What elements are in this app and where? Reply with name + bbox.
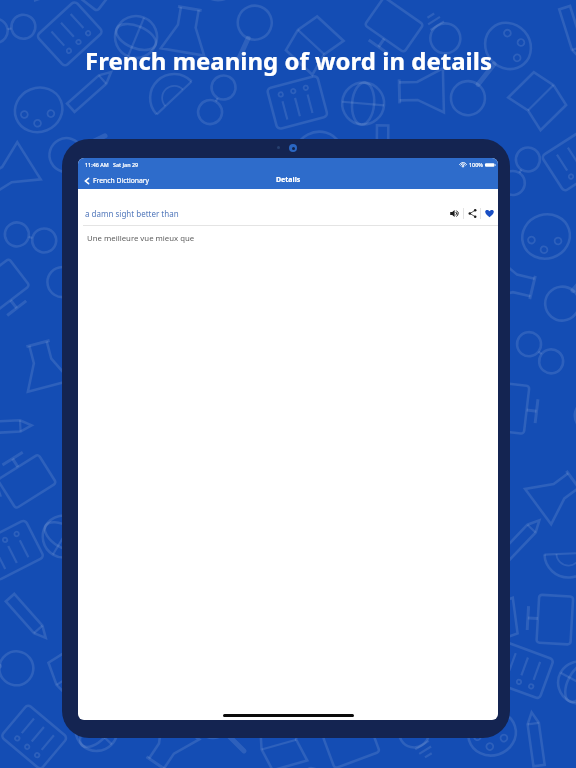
button[interactable]: Favorite [481,204,497,223]
button[interactable]: a damn sight better than [78,208,179,219]
staticText: Une meilleure vue mieux que [87,233,195,244]
button[interactable]: Share [464,204,480,223]
staticText: Sat Jan 29 [113,161,139,168]
staticText: a damn sight better than [85,208,179,219]
staticText: Details [276,175,301,185]
button[interactable]: Pronounce [447,204,463,223]
staticText: 11:46 AM [85,161,109,168]
staticText: 100% [469,161,483,168]
button[interactable]: French Dictionary [83,176,150,185]
staticText: French Dictionary [93,176,150,185]
staticText: French meaning of word in details [85,44,492,77]
